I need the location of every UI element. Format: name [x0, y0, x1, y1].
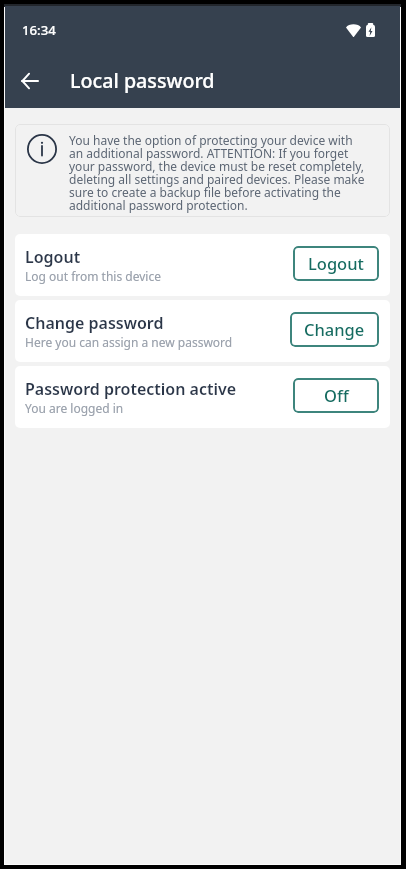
button[interactable]: Logout: [293, 246, 379, 281]
staticText: Logout: [25, 246, 81, 268]
staticText: You have the option of protecting your d…: [69, 132, 367, 214]
staticText: Here you can assign a new password: [25, 334, 233, 350]
button[interactable]: Logout: [15, 234, 390, 296]
button[interactable]: Change password: [15, 300, 390, 362]
button[interactable]: Off: [293, 378, 379, 413]
staticText: You are logged in: [25, 400, 124, 416]
button[interactable]: Back: [7, 58, 53, 104]
staticText: 16:34: [22, 21, 56, 39]
staticText: Change: [304, 318, 365, 340]
staticText: Password protection active: [25, 378, 237, 400]
staticText: Logout: [308, 252, 364, 274]
staticText: Change password: [25, 312, 164, 334]
staticText: Log out from this device: [25, 268, 161, 284]
staticText: Local password: [70, 67, 215, 94]
button[interactable]: Password protection active: [15, 366, 390, 428]
button[interactable]: Change: [290, 312, 379, 347]
staticText: Off: [324, 384, 349, 406]
